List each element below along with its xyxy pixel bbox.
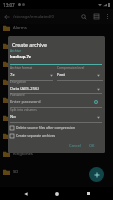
staticText: Archive format [10,66,33,70]
staticText: Create archive [12,41,47,48]
staticText: Compression level [57,66,85,70]
button[interactable]: Telegram [0,181,113,199]
staticText: DCIM [13,61,24,67]
button[interactable]: Movies [0,109,113,127]
staticText: No [10,114,16,120]
button[interactable]: Recent apps [82,187,95,200]
staticText: Enter password [10,99,41,105]
button[interactable]: More options [102,9,113,24]
button[interactable]: SD [0,163,113,181]
staticText: Archive [10,49,22,53]
staticText: Movies [13,115,27,121]
staticText: Android [13,43,29,49]
button[interactable]: Home [50,187,63,200]
staticText: SD [13,169,19,175]
staticText: backup.7z [10,54,31,60]
button[interactable]: Download [0,91,113,109]
button[interactable]: Android [0,37,113,55]
button[interactable]: Create separate archives [10,132,102,139]
button[interactable]: Delete source files after compression [10,124,102,131]
button[interactable]: Change view [90,9,102,24]
button[interactable]: OK [87,141,96,149]
staticText: /storage/emulated/0 [13,14,54,20]
button[interactable]: Documents [0,73,113,91]
staticText: Download [13,97,33,103]
button[interactable]: Alarms [0,19,113,37]
button[interactable]: Back [19,187,32,200]
button[interactable]: Ringtones [0,145,113,163]
staticText: Cancel [69,143,82,148]
staticText: Password [10,93,25,97]
staticText: OK [89,143,95,148]
staticText: 7z [10,72,15,78]
staticText: Encryption [10,80,27,84]
staticText: Music [13,133,25,139]
staticText: Create separate archives [16,133,56,138]
button[interactable]: Add [89,167,104,182]
button[interactable]: Music [0,127,113,145]
staticText: Ringtones [13,151,33,157]
button[interactable]: Search [78,9,90,24]
staticText: Alarms [13,25,27,31]
staticText: Split into volumes [10,108,37,112]
staticText: Data (AES-256) [10,86,39,92]
staticText: Documents [13,79,36,85]
staticText: 13:07 [3,2,15,8]
button[interactable]: DCIM [0,55,113,73]
staticText: Delete source files after compression [16,125,75,130]
staticText: Fast [57,72,66,78]
staticText: Telegram [13,187,32,193]
button[interactable]: Navigate up [0,9,13,24]
button[interactable]: Cancel [69,141,82,149]
